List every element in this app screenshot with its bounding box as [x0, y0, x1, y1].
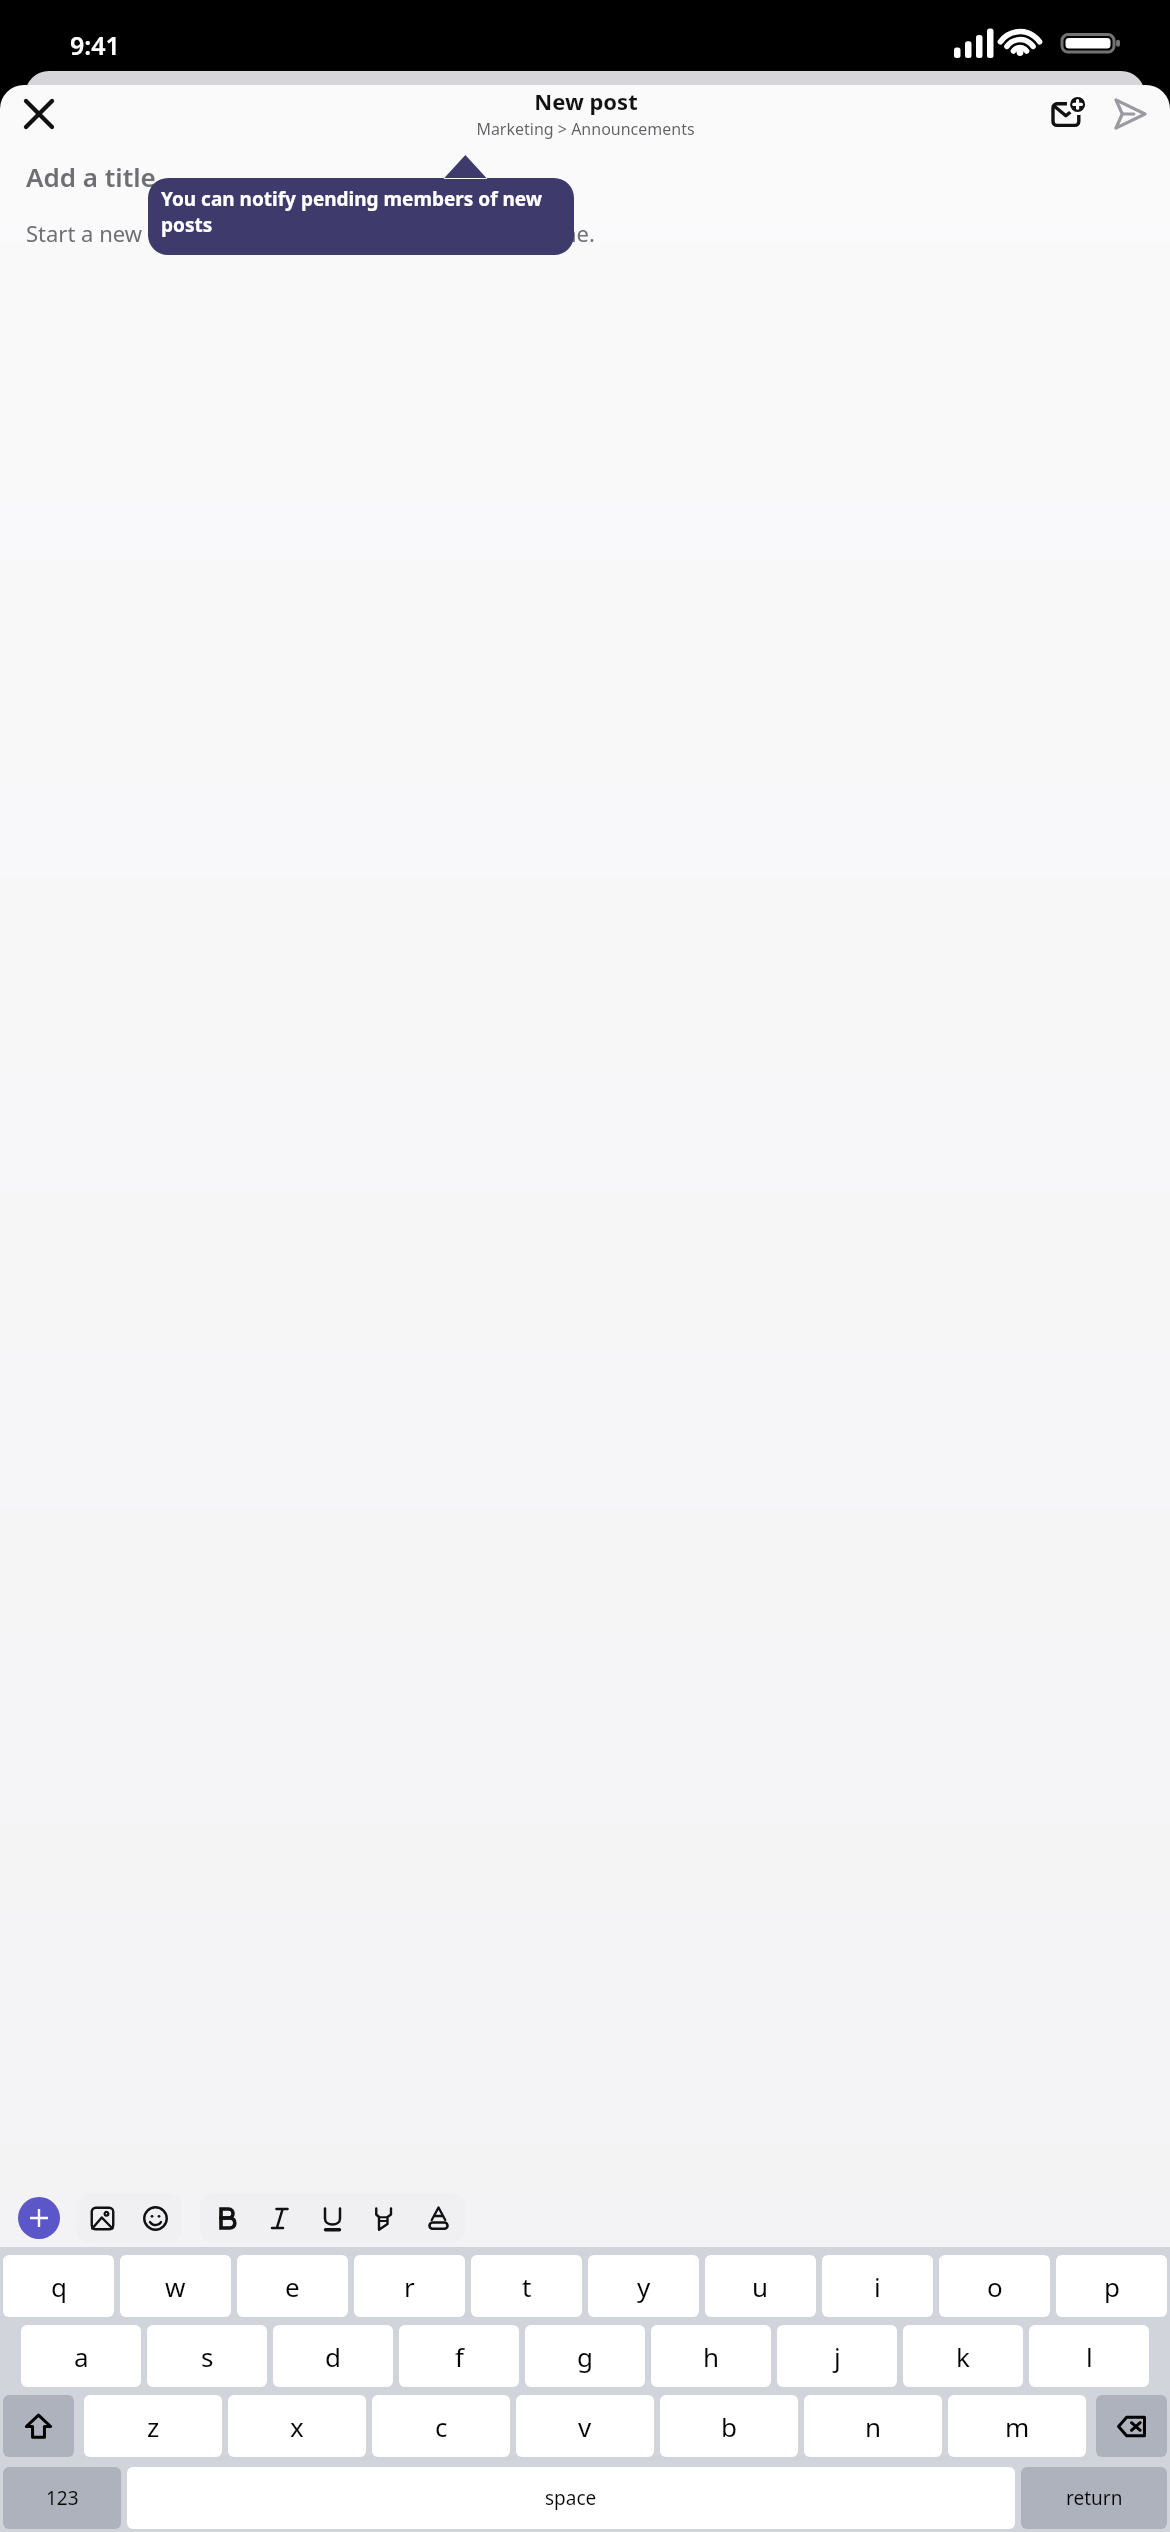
- staticText: 9:41: [70, 28, 120, 62]
- staticText: Start a new conversation. Type @ to ment…: [26, 218, 595, 248]
- staticText: v: [578, 2409, 592, 2444]
- staticText: g: [577, 2339, 593, 2374]
- button[interactable]: h: [651, 2325, 771, 2387]
- button[interactable]: Send: [1104, 88, 1156, 140]
- staticText: b: [721, 2409, 737, 2444]
- staticText: f: [455, 2339, 464, 2374]
- button[interactable]: 123: [3, 2467, 121, 2529]
- button[interactable]: q: [3, 2255, 114, 2317]
- button[interactable]: Highlight: [359, 2193, 412, 2243]
- staticText: s: [201, 2339, 214, 2374]
- button[interactable]: s: [147, 2325, 267, 2387]
- button[interactable]: p: [1056, 2255, 1167, 2317]
- button[interactable]: e: [237, 2255, 348, 2317]
- staticText: Add a title: [26, 159, 156, 194]
- staticText: a: [74, 2339, 89, 2374]
- button[interactable]: x: [228, 2395, 366, 2457]
- button[interactable]: g: [525, 2325, 645, 2387]
- button[interactable]: v: [516, 2395, 654, 2457]
- button[interactable]: return: [1021, 2467, 1167, 2529]
- button[interactable]: Add attachment: [18, 2197, 60, 2239]
- staticText: y: [637, 2269, 651, 2304]
- staticText: r: [404, 2269, 415, 2304]
- button[interactable]: c: [372, 2395, 510, 2457]
- staticText: Marketing > Announcements: [476, 118, 695, 140]
- button[interactable]: t: [471, 2255, 582, 2317]
- button[interactable]: b: [660, 2395, 798, 2457]
- button[interactable]: j: [777, 2325, 897, 2387]
- staticText: You can notify pending members of new po…: [161, 186, 561, 238]
- button[interactable]: Underline: [306, 2193, 359, 2243]
- button[interactable]: m: [948, 2395, 1086, 2457]
- staticText: New post: [534, 86, 638, 116]
- button[interactable]: Backspace: [1096, 2395, 1167, 2457]
- staticText: j: [834, 2339, 841, 2374]
- staticText: k: [956, 2339, 970, 2374]
- button[interactable]: i: [822, 2255, 933, 2317]
- button[interactable]: Text color: [412, 2193, 465, 2243]
- staticText: w: [165, 2269, 186, 2304]
- staticText: return: [1066, 2485, 1123, 2511]
- staticText: u: [752, 2269, 769, 2304]
- button[interactable]: Insert image: [76, 2193, 129, 2243]
- staticText: p: [1104, 2269, 1120, 2304]
- button[interactable]: o: [939, 2255, 1050, 2317]
- staticText: d: [325, 2339, 341, 2374]
- button[interactable]: space: [127, 2467, 1015, 2529]
- staticText: space: [545, 2485, 597, 2511]
- button[interactable]: w: [120, 2255, 231, 2317]
- staticText: h: [703, 2339, 720, 2374]
- staticText: n: [865, 2409, 882, 2444]
- button[interactable]: n: [804, 2395, 942, 2457]
- staticText: e: [285, 2269, 300, 2304]
- staticText: c: [435, 2409, 448, 2444]
- staticText: t: [522, 2269, 532, 2304]
- button[interactable]: u: [705, 2255, 816, 2317]
- button[interactable]: Notify pending members: [1042, 88, 1094, 140]
- button[interactable]: y: [588, 2255, 699, 2317]
- button[interactable]: k: [903, 2325, 1023, 2387]
- staticText: l: [1086, 2339, 1093, 2374]
- button[interactable]: r: [354, 2255, 465, 2317]
- button[interactable]: f: [399, 2325, 519, 2387]
- staticText: z: [147, 2409, 160, 2444]
- button[interactable]: Bold: [200, 2193, 253, 2243]
- button[interactable]: Italic: [253, 2193, 306, 2243]
- staticText: i: [874, 2269, 881, 2304]
- staticText: x: [290, 2409, 304, 2444]
- button[interactable]: d: [273, 2325, 393, 2387]
- staticText: o: [987, 2269, 1003, 2304]
- staticText: q: [51, 2269, 67, 2304]
- button[interactable]: Shift: [3, 2395, 74, 2457]
- button[interactable]: Insert emoji: [129, 2193, 182, 2243]
- button[interactable]: a: [21, 2325, 141, 2387]
- button[interactable]: l: [1029, 2325, 1149, 2387]
- button[interactable]: z: [84, 2395, 222, 2457]
- staticText: 123: [46, 2485, 79, 2511]
- button[interactable]: Close: [14, 89, 64, 139]
- staticText: m: [1005, 2409, 1030, 2444]
